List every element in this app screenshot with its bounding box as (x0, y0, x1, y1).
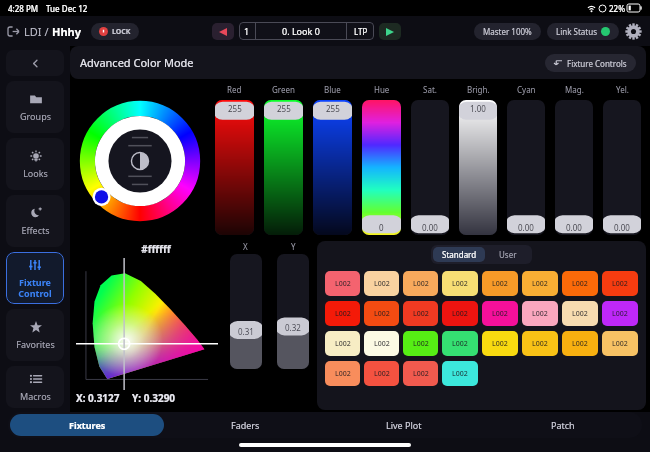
button[interactable]: Settings (625, 23, 642, 40)
button[interactable]: 1 (239, 22, 374, 40)
button[interactable]: L002 (602, 271, 638, 296)
staticText: L002 (374, 369, 390, 379)
staticText: L002 (492, 339, 508, 349)
button[interactable]: L002 (442, 361, 478, 386)
staticText: L002 (452, 369, 468, 379)
button[interactable]: Back (212, 23, 234, 40)
staticText: Mag. (565, 84, 584, 95)
button[interactable]: Fixtures (10, 414, 164, 436)
button[interactable]: L002 (562, 301, 598, 326)
staticText: #ffffff (90, 242, 222, 256)
button[interactable]: 0 (362, 100, 401, 235)
button[interactable]: L002 (602, 301, 638, 326)
button[interactable]: 0.00 (411, 100, 449, 235)
button[interactable]: L002 (442, 271, 478, 296)
button[interactable]: 255 (313, 100, 352, 235)
staticText: Link Status (556, 26, 597, 37)
staticText: Y: 0.3290 (132, 391, 176, 405)
button[interactable]: L002 (364, 301, 399, 326)
button[interactable]: Looks (6, 138, 64, 190)
button[interactable]: 0.00 (603, 100, 641, 235)
staticText: L002 (374, 339, 390, 349)
button[interactable]: Live Plot (326, 414, 481, 436)
staticText: L002 (612, 279, 628, 289)
staticText: Advanced Color Mode (80, 55, 194, 70)
staticText: L002 (413, 339, 429, 349)
button[interactable]: L002 (522, 331, 558, 356)
button[interactable]: 0.32 (277, 254, 309, 369)
button[interactable]: Fixture Control (6, 252, 64, 304)
staticText: Master 100% (483, 26, 532, 37)
button[interactable]: Patch (485, 414, 640, 436)
button[interactable]: Project (8, 26, 19, 37)
button[interactable]: Play (379, 23, 401, 40)
button[interactable]: L002 (325, 331, 360, 356)
button[interactable]: Collapse (6, 50, 64, 76)
button[interactable]: L002 (482, 331, 518, 356)
button[interactable]: L002 (403, 271, 438, 296)
button[interactable]: 0.00 (555, 100, 593, 235)
button[interactable]: Master 100% (474, 23, 541, 40)
button[interactable]: L002 (442, 301, 478, 326)
staticText: 0.31 (238, 326, 254, 337)
staticText: L002 (452, 309, 468, 319)
button[interactable]: L002 (364, 271, 399, 296)
staticText: Y (291, 241, 296, 252)
button[interactable]: 1.00 (459, 100, 497, 235)
button[interactable]: L002 (403, 331, 438, 356)
button[interactable]: 0.00 (507, 100, 545, 235)
button[interactable]: Macros (6, 366, 64, 408)
button[interactable]: L002 (403, 301, 438, 326)
button[interactable]: L002 (562, 271, 598, 296)
staticText: Tue Dec 12 (46, 3, 88, 14)
button[interactable]: L002 (482, 301, 518, 326)
staticText: User (499, 249, 517, 260)
button[interactable]: 0.31 (230, 254, 262, 369)
button[interactable]: 255 (264, 100, 303, 235)
button[interactable]: Standard (433, 247, 485, 262)
button[interactable]: Favorites (6, 309, 64, 361)
staticText: L002 (413, 309, 429, 319)
staticText: 255 (326, 103, 340, 114)
button[interactable]: L002 (482, 271, 518, 296)
staticText: L002 (612, 339, 628, 349)
button[interactable]: Fixture Controls (545, 54, 636, 72)
button[interactable]: L002 (325, 361, 360, 386)
staticText: 255 (277, 103, 291, 114)
staticText: L002 (335, 339, 351, 349)
button[interactable]: LOCK (91, 23, 139, 40)
button[interactable]: User (485, 247, 530, 262)
staticText: Blue (324, 84, 341, 95)
button[interactable]: L002 (522, 301, 558, 326)
staticText: 0.00 (518, 222, 534, 233)
staticText: 1.00 (470, 103, 486, 114)
button[interactable]: L002 (522, 271, 558, 296)
staticText: Faders (231, 419, 260, 431)
staticText: L002 (532, 279, 548, 289)
button[interactable]: Effects (6, 195, 64, 247)
button[interactable]: Link Status (547, 23, 619, 40)
button[interactable]: L002 (562, 331, 598, 356)
staticText: Fixture Control (18, 276, 52, 299)
staticText: Green (272, 84, 295, 95)
staticText: LOCK (112, 27, 131, 37)
staticText: L002 (492, 309, 508, 319)
staticText: 0.00 (566, 222, 582, 233)
staticText: 0.00 (422, 222, 438, 233)
button[interactable]: L002 (403, 361, 438, 386)
staticText: Red (227, 84, 242, 95)
button[interactable]: Groups (6, 81, 64, 133)
staticText: Brigh. (467, 84, 490, 95)
button[interactable]: L002 (364, 361, 399, 386)
button[interactable]: Faders (168, 414, 322, 436)
button[interactable]: L002 (325, 301, 360, 326)
staticText: L002 (374, 279, 390, 289)
staticText: Standard (442, 249, 477, 260)
button[interactable]: 255 (215, 100, 254, 235)
button[interactable]: L002 (364, 331, 399, 356)
button[interactable]: L002 (325, 271, 360, 296)
staticText: X (243, 241, 248, 252)
button[interactable]: Color wheel (76, 97, 204, 225)
button[interactable]: L002 (442, 331, 478, 356)
button[interactable]: L002 (602, 331, 638, 356)
